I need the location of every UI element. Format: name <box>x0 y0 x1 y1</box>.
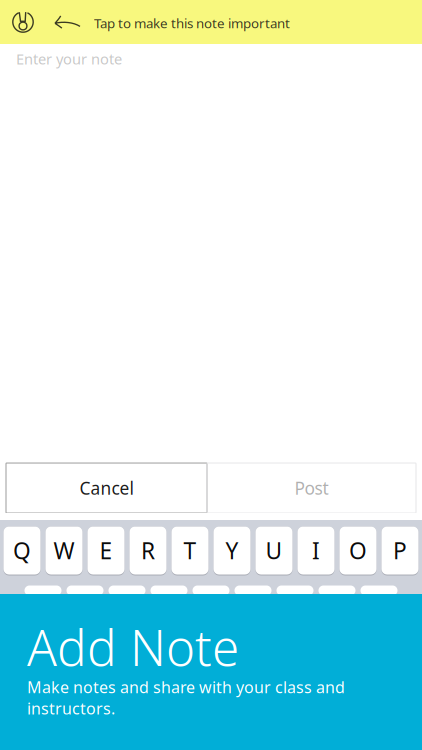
staticText: E <box>99 535 112 565</box>
button[interactable]: Keyboard key <box>192 585 229 595</box>
staticText: Q <box>13 535 31 565</box>
staticText: W <box>53 535 74 565</box>
staticText: O <box>349 535 367 565</box>
button[interactable]: Keyboard key <box>24 585 61 595</box>
staticText: Y <box>225 535 238 565</box>
button[interactable]: W <box>45 526 82 575</box>
staticText: Add Note <box>27 614 239 679</box>
button[interactable]: Q <box>3 526 40 575</box>
button[interactable]: U <box>255 526 292 575</box>
button[interactable]: Cancel <box>6 463 207 513</box>
button[interactable]: O <box>339 526 376 575</box>
button[interactable]: T <box>171 526 208 575</box>
button[interactable]: Tap to make this note important <box>0 0 422 44</box>
staticText: T <box>183 535 196 565</box>
staticText: P <box>393 535 407 565</box>
button[interactable]: P <box>381 526 418 575</box>
staticText: Cancel <box>79 476 133 499</box>
button[interactable]: Keyboard key <box>276 585 313 595</box>
button[interactable]: Y <box>213 526 250 575</box>
staticText: R <box>141 535 155 565</box>
button[interactable]: Keyboard key <box>108 585 145 595</box>
button[interactable]: Keyboard key <box>318 585 355 595</box>
staticText: Tap to make this note important <box>94 14 290 32</box>
staticText: I <box>312 535 320 565</box>
button[interactable]: Keyboard key <box>234 585 271 595</box>
button[interactable]: Keyboard key <box>150 585 187 595</box>
staticText: Post <box>294 476 328 499</box>
staticText: Make notes and share with your class and… <box>27 676 345 719</box>
button[interactable]: Post <box>207 463 416 513</box>
staticText: Enter your note <box>16 49 122 68</box>
staticText: U <box>265 535 282 565</box>
button[interactable]: Keyboard key <box>66 585 103 595</box>
button[interactable]: E <box>87 526 124 575</box>
button[interactable]: R <box>129 526 166 575</box>
button[interactable]: Keyboard key <box>360 585 397 595</box>
button[interactable]: I <box>297 526 334 575</box>
